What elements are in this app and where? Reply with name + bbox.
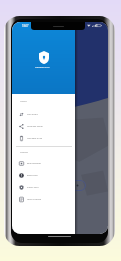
staticText: SecureSurfVPN: [35, 66, 50, 69]
button[interactable]: Connect: [40, 180, 86, 191]
staticText: Actions: [20, 100, 27, 103]
staticText: Report bugs: [27, 174, 38, 177]
staticText: Share with friends: [27, 125, 43, 128]
button[interactable]: Sync servers: [12, 108, 75, 120]
button[interactable]: Report bugs: [12, 169, 75, 181]
staticText: Privacy Policy: [27, 186, 39, 189]
button[interactable]: Privacy Policy: [12, 181, 75, 193]
button[interactable]: More apps by me: [12, 132, 75, 144]
button[interactable]: Terms of service: [12, 193, 75, 205]
staticText: Email Developer: [27, 162, 42, 165]
button[interactable]: Share with friends: [12, 120, 75, 132]
staticText: Terms of service: [27, 198, 42, 201]
staticText: Contacts: [20, 151, 28, 154]
button[interactable]: Email Developer: [12, 157, 75, 169]
staticText: More apps by me: [27, 137, 42, 140]
staticText: 18:07: [22, 24, 29, 27]
staticText: Sync servers: [27, 113, 38, 116]
